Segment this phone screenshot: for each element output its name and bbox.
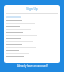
- button[interactable]: [6, 47, 58, 48]
- button[interactable]: Already have an account?: [17, 64, 48, 68]
- button[interactable]: [6, 35, 58, 36]
- button[interactable]: [6, 20, 58, 21]
- button[interactable]: [6, 53, 58, 54]
- button[interactable]: [6, 26, 58, 27]
- button[interactable]: [6, 29, 58, 30]
- button[interactable]: [6, 50, 58, 51]
- button[interactable]: [6, 38, 58, 39]
- button[interactable]: [6, 56, 58, 57]
- button[interactable]: [6, 44, 58, 45]
- button[interactable]: [6, 23, 58, 24]
- staticText: Sign Up: [4, 7, 60, 11]
- button[interactable]: [6, 32, 58, 33]
- button[interactable]: [6, 41, 58, 42]
